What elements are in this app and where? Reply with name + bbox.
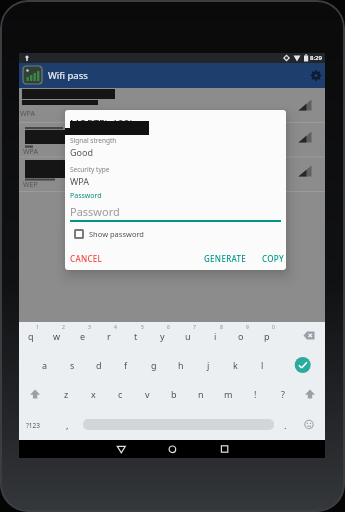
staticText: r: [107, 330, 111, 342]
staticText: l: [261, 359, 264, 371]
staticText: COPY: [262, 253, 284, 264]
button[interactable]: a: [34, 357, 56, 373]
staticText: 6: [167, 324, 170, 331]
button[interactable]: v: [136, 386, 158, 402]
staticText: WPA: [20, 109, 35, 119]
button[interactable]: ?123: [22, 417, 44, 433]
staticText: 5: [141, 324, 144, 331]
staticText: y: [160, 330, 165, 342]
button[interactable]: y: [151, 328, 173, 344]
staticText: Good: [70, 146, 93, 158]
staticText: WPA: [23, 147, 38, 157]
staticText: z: [64, 388, 69, 400]
staticText: c: [118, 388, 123, 400]
staticText: .: [284, 419, 287, 432]
button[interactable]: g: [143, 357, 165, 373]
button[interactable]: t: [125, 328, 147, 344]
button[interactable]: .: [279, 417, 291, 433]
button[interactable]: k: [224, 357, 246, 373]
staticText: v: [145, 388, 150, 400]
button[interactable]: e: [72, 328, 94, 344]
button[interactable]: COPY: [260, 251, 286, 265]
staticText: Wifi pass: [48, 69, 88, 82]
button[interactable]: u: [177, 328, 199, 344]
staticText: p: [264, 330, 270, 342]
button[interactable]: r: [98, 328, 120, 344]
staticText: 9: [246, 324, 249, 331]
button[interactable]: o: [230, 328, 252, 344]
staticText: WEP: [23, 180, 38, 190]
staticText: j: [207, 359, 210, 371]
staticText: 7: [193, 324, 196, 331]
staticText: m: [224, 388, 233, 400]
staticText: k: [233, 359, 238, 371]
staticText: h: [178, 359, 184, 371]
staticText: t: [134, 330, 138, 342]
button[interactable]: h: [170, 357, 192, 373]
button[interactable]: s: [61, 357, 83, 373]
staticText: ,: [66, 419, 69, 432]
staticText: ?123: [26, 421, 40, 430]
staticText: Password: [70, 204, 120, 219]
staticText: ?: [281, 388, 285, 400]
button[interactable]: b: [163, 386, 185, 402]
staticText: f: [124, 359, 128, 371]
staticText: Signal strength: [70, 136, 117, 145]
staticText: WPA: [70, 175, 90, 187]
staticText: s: [70, 359, 75, 371]
button[interactable]: ,: [61, 417, 73, 433]
staticText: Password: [70, 191, 102, 201]
staticText: a: [42, 359, 48, 371]
staticText: b: [171, 388, 177, 400]
button[interactable]: ?: [272, 386, 294, 402]
staticText: !: [254, 388, 257, 400]
staticText: 0: [272, 324, 275, 331]
staticText: GENERATE: [204, 253, 247, 264]
button[interactable]: Password: [70, 203, 220, 219]
staticText: g: [151, 359, 157, 371]
staticText: w: [53, 330, 61, 342]
staticText: q: [28, 330, 34, 342]
staticText: o: [238, 330, 244, 342]
staticText: CANCEL: [70, 253, 103, 264]
staticText: i: [214, 330, 217, 342]
staticText: 4: [114, 324, 117, 331]
button[interactable]: GENERATE: [199, 251, 251, 265]
button[interactable]: Show password: [71, 226, 191, 242]
staticText: 3: [88, 324, 91, 331]
button[interactable]: c: [109, 386, 131, 402]
staticText: n: [198, 388, 204, 400]
staticText: u: [185, 330, 191, 342]
staticText: Show password: [89, 229, 144, 239]
button[interactable]: !: [244, 386, 266, 402]
staticText: d: [96, 359, 102, 371]
staticText: 8:29: [310, 54, 322, 62]
button[interactable]: x: [82, 386, 104, 402]
button[interactable]: f: [115, 357, 137, 373]
button[interactable]: l: [251, 357, 273, 373]
button[interactable]: j: [197, 357, 219, 373]
staticText: MOBTEL 123!: [70, 117, 133, 131]
button[interactable]: p: [256, 328, 278, 344]
button[interactable]: m: [217, 386, 239, 402]
button[interactable]: z: [55, 386, 77, 402]
button[interactable]: CANCEL: [70, 251, 116, 265]
button[interactable]: q: [20, 328, 42, 344]
staticText: x: [91, 388, 96, 400]
staticText: Security type: [70, 165, 110, 174]
button[interactable]: i: [204, 328, 226, 344]
button[interactable]: d: [88, 357, 110, 373]
button[interactable]: n: [190, 386, 212, 402]
staticText: 8: [220, 324, 223, 331]
staticText: e: [80, 330, 86, 342]
staticText: 2: [62, 324, 65, 331]
button[interactable]: w: [46, 328, 68, 344]
staticText: 1: [36, 324, 39, 331]
